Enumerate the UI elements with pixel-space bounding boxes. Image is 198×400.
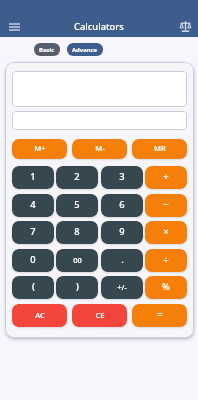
button[interactable]: 7: [12, 221, 54, 244]
staticText: +/-: [117, 282, 127, 292]
staticText: 5: [74, 198, 80, 211]
button[interactable]: 4: [12, 194, 54, 217]
button[interactable]: CE: [72, 304, 127, 327]
staticText: Calculators: [74, 20, 124, 33]
button[interactable]: 2: [56, 166, 98, 189]
button[interactable]: %: [145, 276, 187, 299]
staticText: =: [157, 308, 163, 321]
button[interactable]: 8: [56, 221, 98, 244]
button[interactable]: 00: [56, 249, 98, 272]
button[interactable]: −: [145, 194, 187, 217]
button[interactable]: .: [101, 249, 143, 272]
staticText: 0: [30, 253, 36, 266]
button[interactable]: ×: [145, 221, 187, 244]
staticText: MR: [154, 143, 166, 153]
button[interactable]: M-: [72, 139, 127, 159]
staticText: −: [163, 198, 169, 211]
button[interactable]: (: [12, 276, 54, 299]
staticText: ×: [163, 225, 169, 238]
button[interactable]: 0: [12, 249, 54, 272]
button[interactable]: M+: [12, 139, 67, 159]
staticText: 00: [73, 255, 82, 265]
button[interactable]: =: [132, 304, 187, 327]
button[interactable]: Menu: [4, 17, 24, 37]
staticText: 4: [30, 198, 36, 211]
staticText: Advance: [72, 46, 98, 54]
button[interactable]: ÷: [145, 249, 187, 272]
button[interactable]: 6: [101, 194, 143, 217]
button[interactable]: ): [56, 276, 98, 299]
staticText: 9: [119, 225, 125, 238]
staticText: +: [163, 170, 169, 183]
staticText: 2: [74, 170, 80, 183]
staticText: AC: [35, 310, 45, 320]
button[interactable]: AC: [12, 304, 67, 327]
staticText: CE: [95, 310, 105, 320]
staticText: .: [121, 253, 124, 266]
button[interactable]: 5: [56, 194, 98, 217]
button[interactable]: 3: [101, 166, 143, 189]
button[interactable]: +/-: [101, 276, 143, 299]
staticText: 3: [119, 170, 125, 183]
staticText: ÷: [163, 253, 169, 266]
staticText: %: [162, 280, 170, 293]
button[interactable]: Basic: [34, 43, 60, 56]
button[interactable]: 9: [101, 221, 143, 244]
button[interactable]: 1: [12, 166, 54, 189]
button[interactable]: Advance: [67, 43, 103, 56]
staticText: 8: [74, 225, 80, 238]
staticText: M-: [95, 143, 105, 153]
staticText: 7: [30, 225, 36, 238]
button[interactable]: MR: [132, 139, 187, 159]
staticText: 1: [30, 170, 36, 183]
button[interactable]: Compare: [175, 16, 195, 36]
staticText: M+: [34, 143, 46, 153]
staticText: ): [76, 280, 79, 293]
staticText: (: [32, 280, 35, 293]
staticText: 6: [119, 198, 125, 211]
staticText: Basic: [39, 46, 55, 54]
button[interactable]: +: [145, 166, 187, 189]
